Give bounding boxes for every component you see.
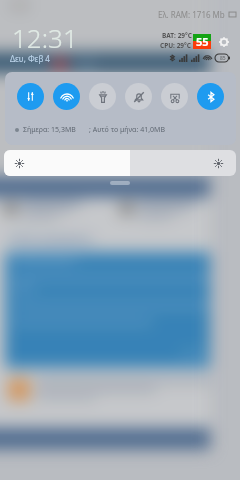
staticText: BAT: 29°C — [162, 31, 192, 40]
button[interactable]: Wi-Fi — [53, 83, 80, 110]
button[interactable]: Bluetooth — [197, 83, 224, 110]
staticText: Ελ. RAM: 1716 Mb — [158, 9, 225, 20]
button[interactable]: Brightness — [4, 150, 236, 176]
button[interactable]: CPU usage 55 — [193, 34, 211, 49]
staticText: CPU: 29°C — [160, 41, 192, 50]
button[interactable]: Cast screen — [161, 83, 188, 110]
staticText: 12:31 — [12, 20, 78, 55]
staticText: ; Αυτό το μήνα: 41,0MB — [89, 125, 165, 135]
staticText: Τίτλος μηνύματος — [8, 232, 93, 246]
staticText: 85 — [220, 55, 226, 62]
button[interactable]: Settings — [219, 37, 229, 47]
button[interactable]: Flashlight — [89, 83, 116, 110]
button[interactable]: Silent — [125, 83, 152, 110]
button[interactable]: Mobile data — [17, 83, 44, 110]
staticText: 55 — [196, 34, 209, 49]
staticText: Σήμερα: 15,3MB — [23, 125, 76, 135]
staticText: Δευ, Φεβ 4 — [10, 53, 50, 64]
